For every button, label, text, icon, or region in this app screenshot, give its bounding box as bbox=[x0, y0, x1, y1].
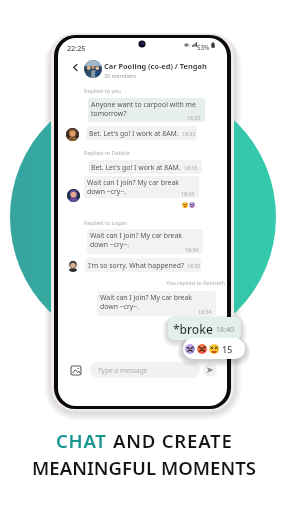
staticText: MEANINGFUL MOMENTS bbox=[32, 455, 256, 480]
staticText: 18:33 bbox=[182, 130, 196, 137]
staticText: Type a message bbox=[98, 366, 148, 375]
button[interactable]: Bet. Let's go! I work at 8AM. bbox=[86, 126, 197, 140]
button[interactable]: Wait can I join? My car break bbox=[87, 229, 203, 254]
staticText: Replied to Debbie bbox=[84, 149, 130, 156]
staticText: 18:34 bbox=[198, 308, 212, 315]
button[interactable]: Confounded reaction bbox=[183, 338, 245, 359]
button[interactable]: Wait can I join? My car break bbox=[84, 176, 199, 198]
staticText: down ~cry~. bbox=[87, 187, 127, 196]
button[interactable]: Bet. Let's go! I work at 8AM. bbox=[88, 160, 202, 174]
button[interactable]: Wait can I join? My car break bbox=[97, 291, 216, 316]
staticText: down ~cry~. bbox=[90, 240, 130, 249]
staticText: 15 bbox=[222, 343, 233, 355]
other: Angry reaction bbox=[197, 344, 207, 354]
staticText: 30 members bbox=[104, 72, 136, 79]
other: Laughing reaction bbox=[182, 202, 188, 208]
other: Smiling reaction bbox=[189, 202, 195, 208]
button[interactable]: I'm so sorry. What happened? bbox=[85, 258, 201, 272]
staticText: Replied to you bbox=[84, 87, 121, 94]
staticText: Car Pooling (co-ed) / Tengah bbox=[104, 61, 207, 71]
staticText: down ~cry~. bbox=[100, 302, 140, 311]
staticText: tomorrow? bbox=[91, 109, 127, 118]
staticText: You replied to Kenneth bbox=[166, 279, 225, 286]
staticText: 18:33 bbox=[184, 164, 198, 171]
staticText: I'm so sorry. What happened? bbox=[88, 261, 184, 270]
staticText: Anyone want to carpool with me bbox=[91, 100, 196, 109]
staticText: 18:34 bbox=[185, 246, 199, 253]
staticText: Wait can I join? My car break bbox=[100, 293, 193, 302]
staticText: Bet. Let's go! I work at 8AM. bbox=[89, 129, 179, 138]
button[interactable]: Attach image bbox=[70, 364, 82, 376]
button[interactable]: Anyone want to carpool with me bbox=[88, 98, 205, 122]
button[interactable]: Back bbox=[69, 61, 81, 73]
staticText: Wait can I join? My car break bbox=[87, 178, 180, 187]
staticText: 18:40 bbox=[216, 325, 234, 335]
staticText: 16:33 bbox=[187, 114, 201, 121]
button[interactable] bbox=[58, 56, 226, 82]
other: Confounded reaction bbox=[185, 344, 195, 354]
staticText: CHAT bbox=[56, 428, 113, 453]
staticText: 18:35 bbox=[187, 262, 201, 269]
staticText: 53% bbox=[197, 43, 210, 51]
other: Laughing reaction bbox=[209, 344, 219, 354]
staticText: 18:34 bbox=[181, 190, 195, 197]
staticText: Replied to Logan bbox=[84, 219, 128, 226]
staticText: 22:25 bbox=[67, 43, 86, 53]
staticText: *broke bbox=[173, 321, 213, 337]
button[interactable]: Send bbox=[203, 363, 217, 377]
staticText: Bet. Let's go! I work at 8AM. bbox=[91, 163, 181, 172]
staticText: Wait can I join? My car break bbox=[90, 231, 183, 240]
button[interactable]: *broke bbox=[168, 317, 241, 340]
staticText: AND CREATE bbox=[113, 428, 233, 453]
button[interactable]: Type a message bbox=[90, 362, 200, 378]
